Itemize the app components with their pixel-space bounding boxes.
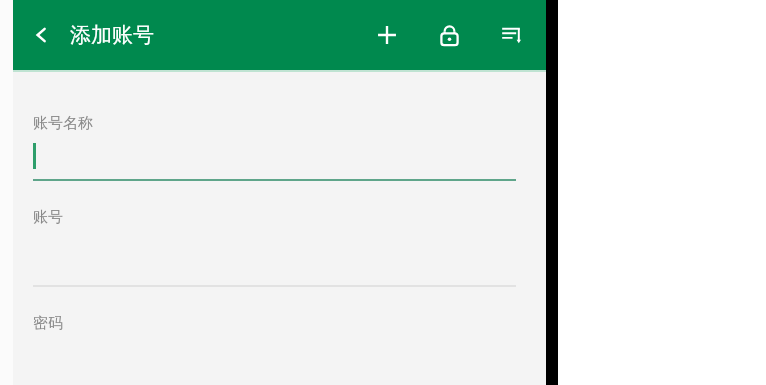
button[interactable]: Add xyxy=(366,14,408,56)
staticText: 密码 xyxy=(33,314,63,333)
staticText: 账号名称 xyxy=(33,114,93,133)
button[interactable]: Lock xyxy=(428,14,470,56)
staticText: 添加账号 xyxy=(70,22,154,48)
staticText: 账号 xyxy=(33,208,63,227)
button[interactable]: Back xyxy=(27,20,57,50)
button[interactable]: Sort xyxy=(490,14,532,56)
